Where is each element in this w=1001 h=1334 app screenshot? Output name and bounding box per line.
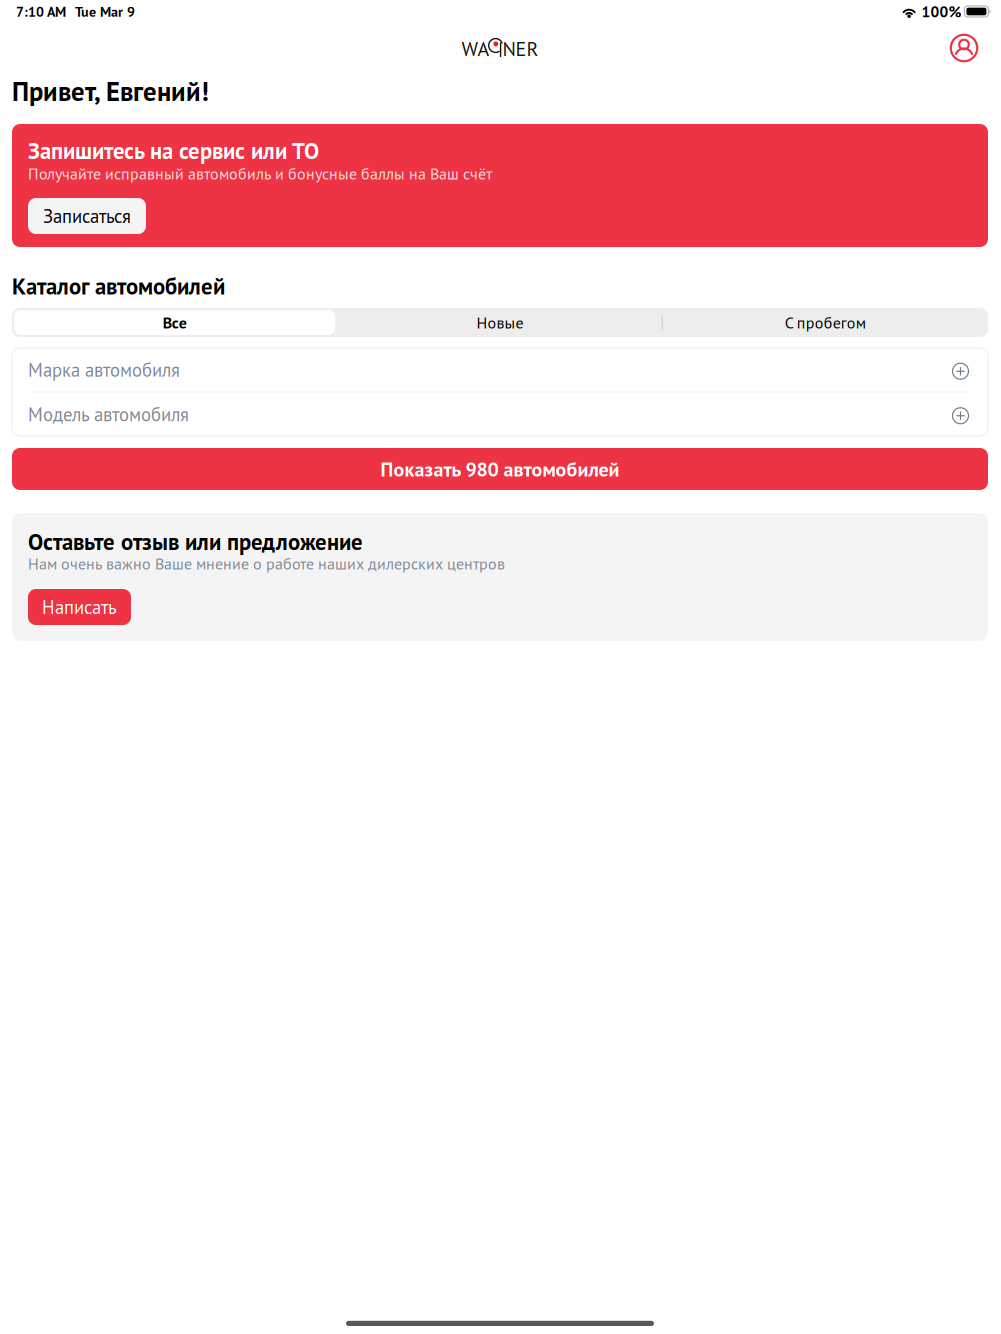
- staticText: Новые: [476, 312, 523, 333]
- staticText: 7:10 AM: [16, 2, 66, 20]
- staticText: Нам очень важно Ваше мнение о работе наш…: [28, 553, 505, 574]
- button[interactable]: Все: [12, 308, 337, 337]
- staticText: Показать 980 автомобилей: [380, 456, 619, 482]
- staticText: Оставьте отзыв или предложение: [28, 527, 363, 556]
- button[interactable]: Марка автомобиля: [12, 348, 988, 391]
- staticText: 100%: [921, 2, 961, 21]
- button[interactable]: Модель автомобиля: [12, 392, 988, 436]
- staticText: Марка автомобиля: [28, 358, 180, 382]
- button[interactable]: Написать: [28, 589, 131, 625]
- staticText: NER: [502, 36, 538, 61]
- staticText: Модель автомобиля: [28, 402, 189, 426]
- button[interactable]: Показать 980 автомобилей: [12, 448, 988, 490]
- staticText: Привет, Евгений!: [12, 74, 209, 108]
- staticText: Написать: [42, 595, 117, 619]
- staticText: Записаться: [43, 204, 131, 228]
- staticText: Tue Mar 9: [75, 2, 135, 20]
- staticText: Получайте исправный автомобиль и бонусны…: [28, 163, 492, 184]
- button[interactable]: С пробегом: [663, 308, 988, 337]
- button[interactable]: Записаться: [28, 198, 146, 234]
- staticText: WA: [461, 36, 489, 61]
- staticText: Запишитесь на сервис или ТО: [28, 136, 319, 165]
- button[interactable]: Account: [950, 34, 978, 62]
- button[interactable]: Новые: [337, 308, 663, 337]
- staticText: Все: [163, 312, 187, 333]
- staticText: С пробегом: [785, 312, 866, 333]
- staticText: Каталог автомобилей: [12, 271, 225, 301]
